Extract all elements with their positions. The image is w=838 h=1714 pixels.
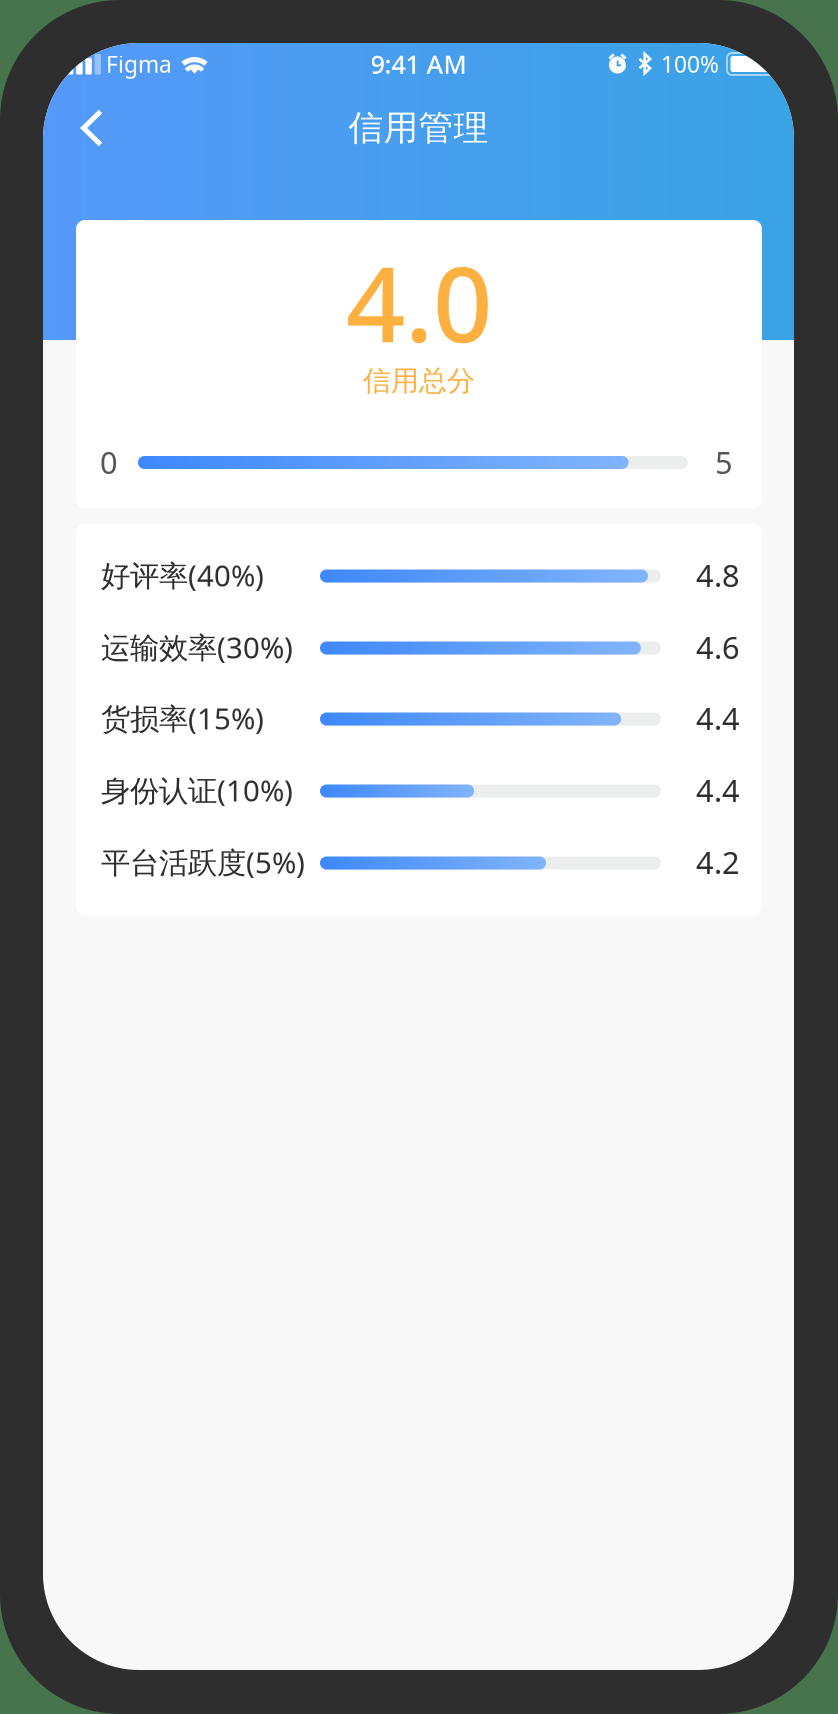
- staticText: 信用总分: [363, 364, 475, 398]
- staticText: 0: [100, 442, 118, 482]
- staticText: 4.0: [346, 233, 492, 371]
- staticText: 4.2: [696, 842, 740, 882]
- staticText: 5: [715, 442, 733, 482]
- staticText: 4.6: [696, 627, 740, 667]
- staticText: 好评率(40%): [101, 555, 264, 594]
- staticText: 货损率(15%): [101, 698, 264, 737]
- staticText: 运输效率(30%): [101, 627, 293, 666]
- staticText: 4.4: [696, 770, 740, 810]
- staticText: 身份认证(10%): [101, 770, 293, 809]
- staticText: Figma: [106, 49, 172, 79]
- button[interactable]: Back: [54, 85, 130, 171]
- staticText: 4.4: [696, 698, 740, 738]
- staticText: 100%: [661, 49, 719, 79]
- staticText: 信用管理: [348, 107, 488, 149]
- staticText: 9:41 AM: [370, 47, 466, 81]
- staticText: 平台活跃度(5%): [101, 842, 305, 881]
- staticText: 4.8: [696, 555, 740, 595]
